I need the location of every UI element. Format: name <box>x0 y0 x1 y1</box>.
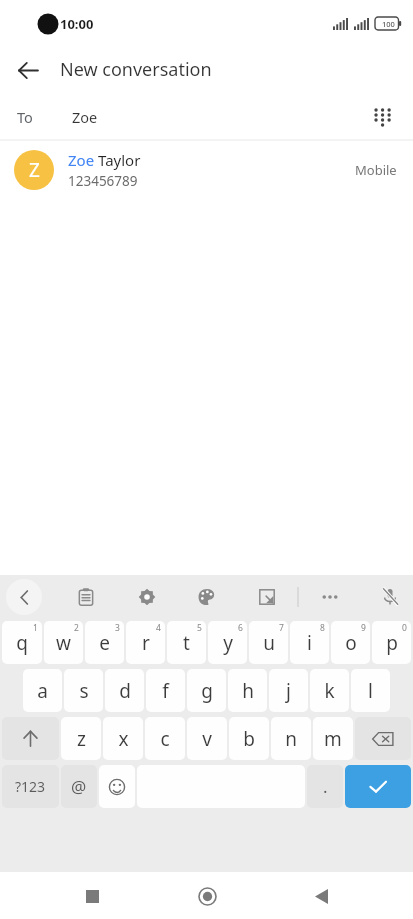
staticText: 3 <box>115 622 120 634</box>
button[interactable]: p <box>372 621 411 664</box>
staticText: 10:00 <box>60 15 94 33</box>
staticText: 123456789 <box>68 172 138 190</box>
staticText: w <box>56 630 71 656</box>
staticText: 1 <box>33 622 38 634</box>
button[interactable]: s <box>64 669 103 712</box>
staticText: k <box>324 678 335 704</box>
staticText: @ <box>71 775 87 798</box>
staticText: Z <box>29 157 40 183</box>
button[interactable]: j <box>269 669 308 712</box>
button[interactable]: a <box>23 669 62 712</box>
staticText: 0 <box>402 622 407 634</box>
staticText: z <box>77 726 86 752</box>
staticText: To <box>17 107 33 127</box>
staticText: 7 <box>279 622 284 634</box>
button[interactable]: Theme <box>190 580 224 614</box>
button[interactable]: b <box>229 717 269 760</box>
button[interactable]: q <box>2 621 42 664</box>
staticText: l <box>368 678 373 704</box>
staticText: x <box>118 726 129 752</box>
button[interactable]: Enter <box>345 765 411 808</box>
staticText: c <box>160 726 170 752</box>
button[interactable]: Recents <box>70 874 114 918</box>
button[interactable]: @ <box>61 765 97 808</box>
button[interactable]: d <box>105 669 144 712</box>
staticText: r <box>142 630 150 656</box>
button[interactable]: Back <box>8 50 48 90</box>
button[interactable]: m <box>313 717 353 760</box>
button[interactable]: Voice input off <box>373 580 407 614</box>
staticText: n <box>285 726 297 752</box>
staticText: t <box>183 630 190 656</box>
button[interactable]: k <box>310 669 349 712</box>
button[interactable]: Resize <box>250 580 284 614</box>
staticText: . <box>323 775 328 798</box>
button[interactable]: i <box>290 621 329 664</box>
button[interactable]: Emoji <box>99 765 135 808</box>
staticText: h <box>242 678 254 704</box>
staticText: 5 <box>197 622 202 634</box>
button[interactable]: Close toolbar <box>6 579 42 615</box>
staticText: p <box>386 630 398 656</box>
button[interactable]: e <box>85 621 124 664</box>
staticText: y <box>223 630 233 656</box>
staticText: Zoe <box>72 107 98 127</box>
button[interactable]: Z <box>0 141 413 199</box>
button[interactable]: w <box>44 621 83 664</box>
button[interactable]: . <box>307 765 343 808</box>
button[interactable]: Clipboard <box>69 580 103 614</box>
staticText: i <box>307 630 312 656</box>
staticText: s <box>79 678 89 704</box>
button[interactable]: u <box>249 621 288 664</box>
button[interactable]: Backspace <box>355 717 411 760</box>
staticText: 4 <box>156 622 161 634</box>
button[interactable]: c <box>145 717 185 760</box>
button[interactable]: Back <box>299 874 343 918</box>
button[interactable]: Shift <box>2 717 59 760</box>
staticText: f <box>162 678 169 704</box>
staticText: d <box>119 678 131 704</box>
staticText: 9 <box>361 622 366 634</box>
button[interactable]: o <box>331 621 370 664</box>
staticText: g <box>201 678 213 704</box>
button[interactable]: n <box>271 717 311 760</box>
button[interactable]: l <box>351 669 390 712</box>
button[interactable]: f <box>146 669 185 712</box>
staticText: a <box>37 678 48 704</box>
staticText: j <box>286 678 291 704</box>
button[interactable]: v <box>187 717 227 760</box>
staticText: Zoe Taylor <box>68 150 141 170</box>
button[interactable]: Dialpad <box>361 96 403 138</box>
staticText: Mobile <box>355 161 397 179</box>
staticText: 8 <box>320 622 325 634</box>
button[interactable]: z <box>61 717 101 760</box>
button[interactable]: g <box>187 669 226 712</box>
staticText: b <box>243 726 255 752</box>
staticText: 100 <box>382 19 395 29</box>
staticText: New conversation <box>60 57 212 82</box>
button[interactable]: Settings <box>130 580 164 614</box>
staticText: q <box>16 630 28 656</box>
button[interactable]: ?123 <box>2 765 59 808</box>
button[interactable]: Home <box>185 874 229 918</box>
button[interactable]: t <box>167 621 206 664</box>
staticText: o <box>345 630 357 656</box>
staticText: 6 <box>238 622 243 634</box>
button[interactable]: h <box>228 669 267 712</box>
staticText: u <box>263 630 275 656</box>
staticText: m <box>324 726 342 752</box>
button[interactable]: r <box>126 621 165 664</box>
staticText: e <box>99 630 110 656</box>
button[interactable]: x <box>103 717 143 760</box>
button[interactable]: y <box>208 621 247 664</box>
staticText: v <box>202 726 212 752</box>
staticText: ?123 <box>15 777 46 796</box>
button[interactable]: More options <box>313 580 347 614</box>
staticText: 2 <box>74 622 79 634</box>
